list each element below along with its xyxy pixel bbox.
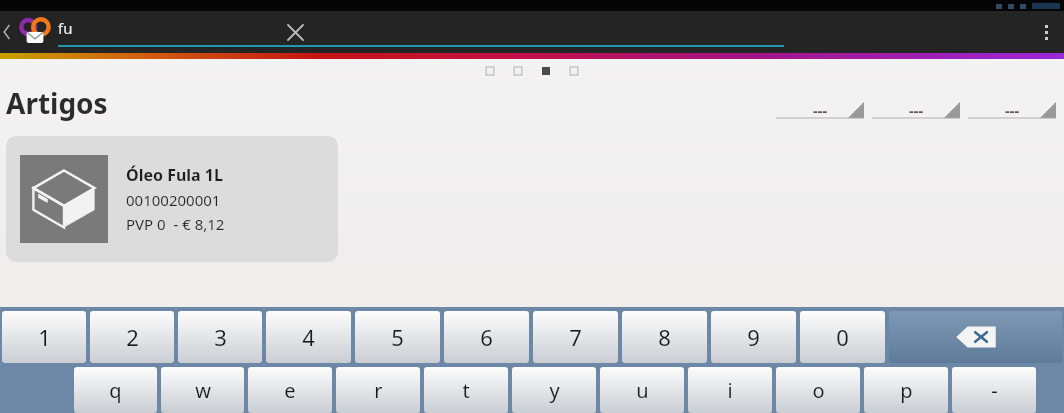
staticText: fu [58,18,73,38]
button[interactable]: t [424,367,508,413]
staticText: --- [813,100,828,120]
staticText: y [549,377,560,404]
button[interactable]: e [248,367,332,413]
button[interactable]: 5 [355,311,440,363]
button[interactable]: 2 [90,311,174,363]
staticText: e [284,377,296,404]
button[interactable]: 6 [444,311,529,363]
staticText: p [900,377,913,404]
button[interactable]: Filter [968,96,1056,124]
button[interactable]: o [776,367,860,413]
button[interactable]: fu [58,18,784,47]
button[interactable]: i [688,367,772,413]
button[interactable]: 0 [800,311,885,363]
staticText: 8 [658,322,671,352]
button[interactable]: - [952,367,1036,413]
staticText: w [195,377,211,404]
button[interactable]: Filter [872,96,960,124]
button[interactable]: 1 [2,311,86,363]
button[interactable]: Clear search [280,17,310,47]
staticText: 00100200001 [126,190,221,210]
staticText: 1 [38,322,51,352]
button[interactable]: 7 [533,311,618,363]
staticText: 7 [569,322,582,352]
staticText: 0 [836,322,849,352]
staticText: - [991,377,998,404]
staticText: q [109,377,122,404]
button[interactable]: q [74,367,157,413]
staticText: Artigos [6,84,108,122]
button[interactable]: Page [570,67,578,75]
staticText: --- [1005,100,1020,120]
staticText: 9 [747,322,760,352]
staticText: r [374,377,383,404]
button[interactable]: 4 [266,311,351,363]
button[interactable]: App logo [14,11,56,53]
button[interactable]: Back [0,11,14,53]
staticText: 3 [214,322,227,352]
staticText: 6 [480,322,493,352]
button[interactable]: y [512,367,596,413]
button[interactable]: More options [1028,11,1064,53]
staticText: u [636,377,649,404]
staticText: --- [909,100,924,120]
button[interactable]: w [161,367,244,413]
button[interactable]: Filter [776,96,864,124]
button[interactable]: 9 [711,311,796,363]
staticText: i [727,377,733,404]
button[interactable]: Page [514,67,522,75]
button[interactable]: Page [486,67,494,75]
button[interactable]: 3 [178,311,262,363]
button[interactable]: u [600,367,684,413]
button[interactable]: Backspace [889,311,1062,363]
button[interactable]: r [336,367,420,413]
staticText: Óleo Fula 1L [126,164,223,186]
staticText: t [462,377,470,404]
button[interactable]: 8 [622,311,707,363]
staticText: o [812,377,825,404]
button[interactable]: p [864,367,948,413]
staticText: PVP 0 - € 8,12 [126,214,225,234]
staticText: 2 [126,322,139,352]
staticText: 4 [302,322,315,352]
button[interactable]: Óleo Fula 1L [6,136,338,262]
staticText: 5 [391,322,404,352]
